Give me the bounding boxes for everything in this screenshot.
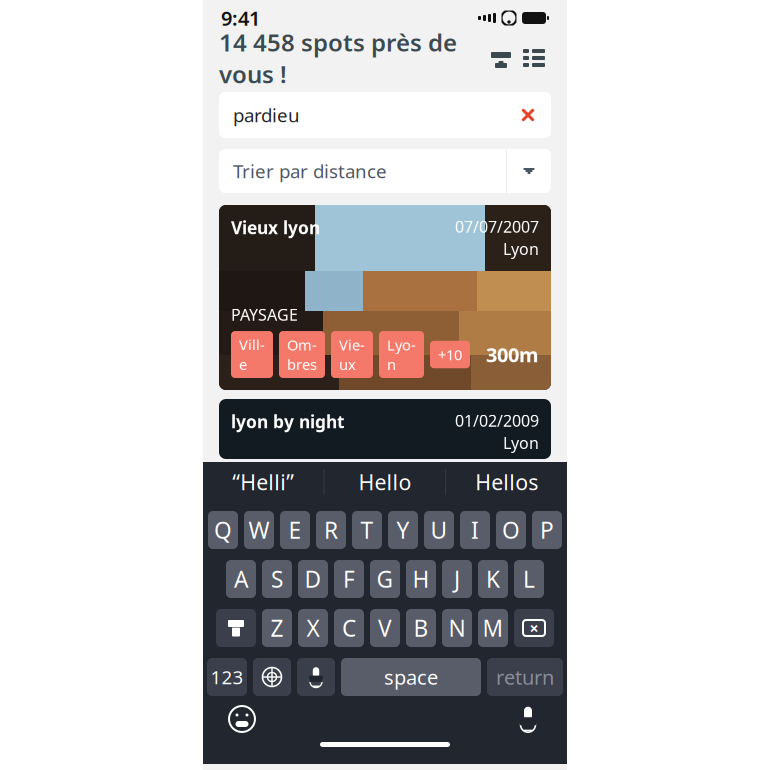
staticText: U: [430, 515, 447, 545]
staticText: Trier par distance: [233, 159, 387, 183]
button[interactable]: F: [334, 560, 364, 598]
staticText: C: [342, 613, 356, 643]
button[interactable]: Affichage liste: [517, 43, 551, 73]
staticText: V: [378, 613, 392, 643]
button[interactable]: K: [478, 560, 508, 598]
button[interactable]: O: [496, 511, 526, 549]
staticText: Hello: [358, 468, 411, 496]
staticText: PAYSAGE: [231, 304, 298, 325]
button[interactable]: R: [316, 511, 346, 549]
staticText: Vieux: [339, 335, 365, 374]
staticText: E: [288, 515, 301, 545]
staticText: Lyon: [503, 238, 539, 259]
staticText: X: [306, 613, 319, 643]
button[interactable]: Hello: [325, 462, 445, 502]
button[interactable]: A: [226, 560, 256, 598]
button[interactable]: Q: [208, 511, 238, 549]
button[interactable]: Hellos: [446, 462, 567, 502]
button[interactable]: H: [406, 560, 436, 598]
button[interactable]: Supprimer: [514, 609, 554, 647]
staticText: A: [234, 564, 248, 594]
button[interactable]: W: [244, 511, 274, 549]
button[interactable]: I: [460, 511, 490, 549]
button[interactable]: return: [487, 658, 563, 696]
button[interactable]: M: [478, 609, 508, 647]
staticText: 300m: [486, 341, 539, 368]
button[interactable]: Changer de clavier: [253, 658, 291, 696]
staticText: M: [482, 613, 503, 643]
staticText: return: [496, 664, 554, 690]
button[interactable]: Z: [262, 609, 292, 647]
staticText: Ville: [239, 335, 265, 374]
button[interactable]: Majuscule: [216, 609, 256, 647]
button[interactable]: J: [442, 560, 472, 598]
staticText: T: [360, 515, 373, 545]
button[interactable]: space: [341, 658, 481, 696]
button[interactable]: G: [370, 560, 400, 598]
button[interactable]: Vieux lyon: [219, 205, 551, 390]
staticText: pardieu: [233, 103, 300, 127]
staticText: F: [343, 564, 355, 594]
staticText: P: [540, 515, 554, 545]
button[interactable]: C: [334, 609, 364, 647]
staticText: Ombres: [287, 335, 317, 374]
button[interactable]: N: [442, 609, 472, 647]
staticText: S: [271, 564, 283, 594]
button[interactable]: lyon by night: [219, 399, 551, 459]
staticText: Lyon: [503, 432, 539, 453]
button[interactable]: L: [514, 560, 544, 598]
staticText: I: [471, 515, 479, 545]
staticText: Z: [270, 613, 283, 643]
staticText: +10: [438, 345, 462, 364]
button[interactable]: P: [532, 511, 562, 549]
staticText: 07/07/2007: [455, 216, 539, 237]
staticText: lyon by night: [231, 410, 345, 433]
staticText: W: [248, 515, 269, 545]
staticText: D: [304, 564, 321, 594]
staticText: Lyon: [387, 335, 416, 374]
button[interactable]: Y: [388, 511, 418, 549]
button[interactable]: Emoji: [225, 702, 259, 736]
button[interactable]: “Helli”: [203, 462, 324, 502]
button[interactable]: E: [280, 511, 310, 549]
button[interactable]: pardieu: [219, 92, 551, 138]
staticText: H: [412, 564, 429, 594]
staticText: N: [448, 613, 465, 643]
staticText: ×: [529, 617, 538, 639]
staticText: L: [523, 564, 535, 594]
staticText: Hellos: [475, 468, 538, 496]
staticText: 9:41: [221, 5, 260, 31]
staticText: Y: [396, 515, 409, 545]
button[interactable]: U: [424, 511, 454, 549]
staticText: G: [376, 564, 393, 594]
staticText: J: [454, 564, 460, 594]
staticText: B: [413, 613, 428, 643]
button[interactable]: Filtrer: [485, 43, 517, 73]
staticText: K: [486, 564, 500, 594]
button[interactable]: D: [298, 560, 328, 598]
staticText: 01/02/2009: [455, 410, 539, 431]
button[interactable]: T: [352, 511, 382, 549]
button[interactable]: Dictée: [297, 658, 335, 696]
button[interactable]: B: [406, 609, 436, 647]
staticText: Q: [214, 515, 232, 545]
staticText: O: [502, 515, 520, 545]
button[interactable]: S: [262, 560, 292, 598]
button[interactable]: Trier par distance: [219, 149, 551, 193]
button[interactable]: 123: [207, 658, 247, 696]
button[interactable]: X: [298, 609, 328, 647]
staticText: “Helli”: [232, 468, 294, 496]
staticText: 123: [210, 665, 243, 689]
staticText: 14 458 spots près de vous !: [219, 26, 457, 90]
button[interactable]: Dictée: [511, 702, 545, 736]
button[interactable]: V: [370, 609, 400, 647]
staticText: R: [324, 515, 338, 545]
staticText: Vieux lyon: [231, 216, 320, 239]
staticText: space: [384, 664, 438, 690]
